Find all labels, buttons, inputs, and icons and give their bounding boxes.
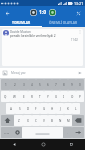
staticText: Mesaj yaz [11, 71, 26, 75]
staticText: ÖNEMLİ OLAYLAR [49, 21, 78, 25]
staticText: T [39, 95, 41, 99]
button[interactable]: A [6, 103, 15, 114]
button[interactable]: Back [2, 8, 12, 18]
button[interactable]: ?123 [1, 127, 13, 138]
staticText: B [51, 119, 53, 123]
staticText: C [35, 119, 37, 123]
button[interactable]: T [36, 91, 44, 102]
button[interactable]: E [19, 91, 28, 102]
button[interactable]: 8 [60, 79, 68, 90]
staticText: 5 [39, 83, 41, 87]
button[interactable]: S [15, 103, 24, 114]
staticText: L [75, 107, 77, 111]
staticText: D [27, 107, 30, 111]
staticText: I [63, 95, 65, 99]
staticText: YORUMLAR [12, 21, 31, 25]
button[interactable]: K [64, 103, 72, 114]
button[interactable]: 3 [19, 79, 28, 90]
staticText: H [51, 107, 54, 111]
staticText: M [67, 119, 70, 123]
button[interactable]: O [68, 91, 76, 102]
staticText: 7 [55, 83, 57, 87]
button[interactable]: ÖNEMLİ OLAYLAR [42, 19, 85, 26]
staticText: S [19, 107, 21, 111]
staticText: 1:0 [39, 9, 47, 16]
button[interactable]: YORUMLAR [0, 19, 42, 26]
staticText: 1 [5, 83, 7, 87]
staticText: 8 [63, 83, 65, 87]
staticText: ?123 [4, 131, 10, 134]
button[interactable]: Mute notifications [73, 8, 83, 18]
staticText: Davide Mustan [10, 30, 31, 34]
button[interactable]: Z [14, 115, 23, 126]
staticText: P [79, 95, 81, 99]
button[interactable]: U [52, 91, 60, 102]
staticText: E [23, 95, 25, 99]
button[interactable]: I [60, 91, 68, 102]
button[interactable]: C [32, 115, 40, 126]
staticText: X [27, 119, 29, 123]
button[interactable]: Send [77, 70, 83, 76]
button[interactable]: P [76, 91, 84, 102]
button[interactable]: Home [29, 139, 57, 150]
staticText: Q [4, 95, 7, 99]
staticText: O [71, 95, 74, 99]
button[interactable]: J [56, 103, 64, 114]
button[interactable]: 2 [10, 79, 19, 90]
staticText: 11:02 [71, 38, 78, 42]
staticText: G [43, 107, 46, 111]
staticText: 4 [31, 83, 33, 87]
button[interactable]: Back [0, 139, 29, 150]
button[interactable]: 0 [76, 79, 84, 90]
staticText: A [10, 107, 12, 111]
button[interactable]: 6 [44, 79, 52, 90]
button[interactable]: B [48, 115, 56, 126]
button[interactable]: Attach image [2, 70, 8, 76]
button[interactable]: H [48, 103, 56, 114]
button[interactable]: W [10, 91, 19, 102]
staticText: 3 [23, 83, 25, 87]
button[interactable]: 4 [28, 79, 36, 90]
staticText: W [13, 95, 16, 99]
staticText: V [43, 119, 45, 123]
button[interactable]: Mesaj yaz [10, 68, 77, 78]
button[interactable]: N [56, 115, 64, 126]
staticText: penaltı kesinlikle verilmeliydi 2 [10, 34, 56, 38]
button[interactable]: Q [1, 91, 10, 102]
button[interactable]: Emoji [13, 127, 22, 138]
button[interactable]: 9 [68, 79, 76, 90]
button[interactable]: 1 [1, 79, 10, 90]
button[interactable]: Backspace [72, 115, 84, 126]
staticText: F [35, 107, 37, 111]
button[interactable]: V [40, 115, 48, 126]
staticText: N [59, 119, 62, 123]
button[interactable]: F [32, 103, 40, 114]
button[interactable]: G [40, 103, 48, 114]
button[interactable]: Y [44, 91, 52, 102]
staticText: 9 [71, 83, 73, 87]
button[interactable]: L [72, 103, 80, 114]
button[interactable]: R [28, 91, 36, 102]
staticText: 2 [14, 83, 16, 87]
button[interactable]: Davide Mustan [2, 29, 83, 66]
staticText: J [60, 107, 61, 111]
button[interactable]: D [24, 103, 32, 114]
button[interactable]: X [23, 115, 32, 126]
button[interactable]: Enter [72, 127, 84, 138]
button[interactable]: Shift [1, 115, 14, 126]
button[interactable]: 7 [52, 79, 60, 90]
staticText: Y [47, 95, 49, 99]
button[interactable]: 5 [36, 79, 44, 90]
staticText: 6 [47, 83, 49, 87]
button[interactable]: M [64, 115, 72, 126]
staticText: Z [18, 119, 20, 123]
staticText: 0 [79, 83, 81, 87]
button[interactable]: Space [22, 127, 63, 138]
staticText: 13:21 [74, 1, 84, 6]
button[interactable]: Recent apps [57, 139, 85, 150]
staticText: K [67, 107, 69, 111]
staticText: U [55, 95, 58, 99]
